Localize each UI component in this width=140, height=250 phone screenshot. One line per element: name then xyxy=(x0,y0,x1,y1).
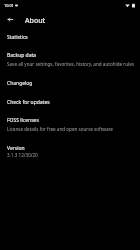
button[interactable]: Version xyxy=(0,141,140,160)
staticText: Check for updates xyxy=(7,99,50,106)
staticText: Backup data xyxy=(7,52,37,59)
button[interactable]: Statistics xyxy=(0,30,140,43)
staticText: Changelog xyxy=(7,80,33,87)
staticText: About xyxy=(25,16,46,26)
staticText: 3.1.3 12/30/20 xyxy=(7,152,140,158)
button[interactable]: Check for updates xyxy=(0,95,140,108)
button[interactable]: FOSS licenses xyxy=(0,113,140,133)
staticText: Statistics xyxy=(7,34,28,41)
staticText: FOSS licenses xyxy=(7,117,39,124)
button[interactable]: Changelog xyxy=(0,76,140,89)
staticText: 10:01 xyxy=(4,3,14,8)
staticText: Save all your settings, favorites, histo… xyxy=(7,61,140,67)
staticText: Version xyxy=(7,145,25,152)
staticText: License details for free and open source… xyxy=(7,126,140,132)
button[interactable]: Backup data xyxy=(0,48,140,69)
button[interactable]: Navigate up xyxy=(0,9,20,29)
